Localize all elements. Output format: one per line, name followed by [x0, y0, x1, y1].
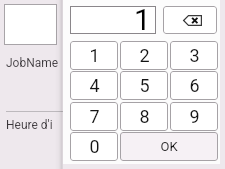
staticText: Heure d'i	[6, 118, 53, 132]
staticText: 0	[89, 136, 100, 157]
button[interactable]: 5	[120, 71, 168, 100]
button[interactable]: 6	[170, 71, 218, 100]
staticText: 6	[189, 75, 200, 96]
staticText: OK	[160, 139, 178, 154]
staticText: 9	[189, 106, 200, 127]
button[interactable]: 4	[70, 71, 118, 100]
button[interactable]: 3	[170, 41, 218, 70]
staticText: 7	[89, 106, 100, 127]
staticText: 8	[139, 106, 150, 127]
staticText: 1	[89, 45, 100, 66]
button[interactable]	[4, 4, 57, 45]
button[interactable]: 7	[70, 102, 118, 131]
button[interactable]: 1	[70, 41, 118, 70]
button[interactable]: 9	[170, 102, 218, 131]
staticText: 5	[139, 75, 150, 96]
button[interactable]: 0	[70, 132, 118, 161]
staticText: JobName	[6, 56, 59, 70]
button[interactable]: OK	[120, 132, 218, 161]
button[interactable]: Backspace	[163, 6, 217, 34]
button[interactable]: 8	[120, 102, 168, 131]
staticText: 2	[139, 45, 150, 66]
staticText: 3	[189, 45, 200, 66]
staticText: 4	[89, 75, 100, 96]
button[interactable]: 2	[120, 41, 168, 70]
staticText: 1	[134, 2, 151, 37]
